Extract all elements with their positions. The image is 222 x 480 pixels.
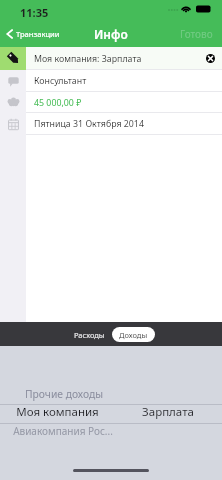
button[interactable]: Пятница 31 Октября 2014 <box>0 113 222 135</box>
staticText: Зарплата <box>142 404 194 420</box>
staticText: 45 000,00 ₽ <box>34 97 82 109</box>
other: Wi-Fi <box>181 5 191 13</box>
staticText: 11:35 <box>20 5 49 20</box>
button[interactable]: Моя компания: Зарплата <box>0 47 222 70</box>
button[interactable]: Расходы <box>67 327 112 342</box>
button[interactable]: 45 000,00 ₽ <box>0 92 222 113</box>
staticText: Расходы <box>74 330 105 340</box>
staticText: Доходы <box>119 330 148 340</box>
staticText: Готово <box>180 27 213 41</box>
staticText: Пятница 31 Октября 2014 <box>34 118 144 130</box>
staticText: Авиакомпания Рос... <box>13 424 113 438</box>
button[interactable]: Транзакции <box>0 24 64 44</box>
staticText: Прочие доходы <box>25 387 103 401</box>
staticText: Моя компания <box>16 404 99 420</box>
staticText: Моя компания: Зарплата <box>34 53 142 65</box>
staticText: Инфо <box>94 26 128 42</box>
button[interactable]: Доходы <box>112 327 155 342</box>
staticText: Транзакции <box>16 29 60 39</box>
button[interactable]: Готово <box>173 24 222 44</box>
other: Clear <box>206 54 215 63</box>
staticText: Консультант <box>34 75 87 87</box>
other: Battery <box>196 5 213 13</box>
button[interactable]: Консультант <box>0 70 222 92</box>
